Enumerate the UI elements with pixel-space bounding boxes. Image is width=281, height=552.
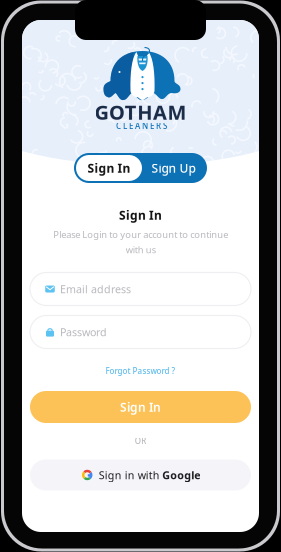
staticText: Sign Up xyxy=(151,160,195,176)
button[interactable]: Sign Up xyxy=(142,155,205,181)
staticText: Email address xyxy=(60,282,131,296)
staticText: Sign In xyxy=(120,399,161,415)
staticText: OR xyxy=(135,436,146,446)
staticText: GOTHAM xyxy=(94,99,186,125)
button[interactable]: Forgot Password ? xyxy=(101,362,179,380)
staticText: Password xyxy=(60,325,107,339)
staticText: Please Login to your account to continue… xyxy=(53,228,228,256)
staticText: Sign In xyxy=(87,160,130,176)
button[interactable]: Sign in with xyxy=(30,459,251,490)
staticText: Sign in with xyxy=(99,468,160,482)
staticText: C L E A N E R S xyxy=(116,121,167,131)
button[interactable]: Sign In xyxy=(76,155,142,181)
button[interactable]: Sign In xyxy=(30,391,251,423)
staticText: Forgot Password ? xyxy=(105,366,175,376)
staticText: Google xyxy=(162,468,200,482)
staticText: Sign In xyxy=(119,207,162,223)
